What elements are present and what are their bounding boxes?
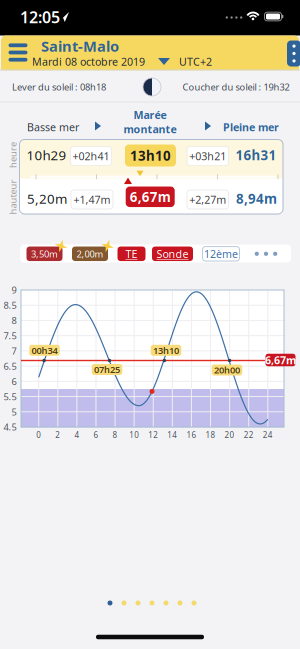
staticText: TE [125, 247, 137, 261]
staticText: 7.5 [3, 329, 16, 342]
staticText: 24 [263, 430, 273, 440]
staticText: 9 [11, 284, 16, 296]
staticText: 5.5 [3, 390, 16, 403]
staticText: 8.5 [3, 299, 16, 311]
staticText: 10 [129, 430, 139, 440]
staticText: 12ème [204, 247, 238, 261]
staticText: Pleine mer [223, 120, 279, 134]
staticText: Sonde [156, 247, 188, 261]
staticText: 6,67m [265, 353, 296, 367]
button[interactable]: Plus [244, 246, 288, 261]
staticText: montante [123, 122, 176, 136]
button[interactable]: Pleine mer [223, 120, 279, 134]
staticText: 18 [205, 430, 215, 440]
button[interactable]: Sonde [152, 247, 193, 261]
staticText: 22 [244, 430, 254, 440]
staticText: 6 [93, 430, 98, 440]
staticText: 16 [186, 430, 196, 440]
staticText: Lever du soleil : 08h18 [12, 81, 106, 93]
staticText: 14 [167, 430, 177, 440]
staticText: 20h00 [214, 364, 240, 376]
staticText: 5 [11, 406, 16, 418]
staticText: 3,50m [31, 248, 58, 260]
staticText: UTC+2 [179, 54, 212, 69]
staticText: +02h41 [72, 149, 109, 163]
staticText: 8,94m [236, 190, 277, 207]
staticText: 12 [148, 430, 158, 440]
staticText: hauteur [0, 191, 30, 203]
button[interactable]: 2,00m [72, 247, 108, 261]
button[interactable]: Menu [3, 38, 33, 66]
button[interactable]: Pages [107, 600, 196, 605]
staticText: 6.5 [3, 360, 16, 372]
button[interactable]: Mardi 08 octobre 2019 [32, 54, 212, 69]
staticText: 12:05 [20, 6, 60, 28]
staticText: heure [0, 149, 26, 161]
staticText: Basse mer [27, 120, 79, 134]
staticText: 13h10 [130, 147, 171, 164]
staticText: 16h31 [235, 146, 276, 164]
staticText: +2,27m [189, 192, 226, 207]
staticText: 2,00m [76, 248, 103, 260]
button[interactable]: Marée précédente [95, 121, 101, 130]
staticText: 4.5 [3, 421, 16, 433]
staticText: 5,20m [27, 190, 67, 207]
staticText: 6,67m [130, 188, 171, 206]
staticText: Saint-Malo [41, 36, 119, 56]
staticText: 00h34 [31, 344, 57, 356]
staticText: Coucher du soleil : 19h32 [182, 81, 289, 93]
staticText: Mardi 08 octobre 2019 [32, 54, 145, 69]
staticText: 7 [11, 345, 16, 357]
staticText: +03h21 [189, 149, 226, 163]
button[interactable]: Marée suivante [205, 121, 211, 130]
button[interactable]: 12ème [202, 247, 239, 261]
staticText: 0 [36, 430, 41, 440]
staticText: 20 [225, 430, 235, 440]
button[interactable]: 3,50m [26, 247, 62, 261]
staticText: 8 [113, 430, 118, 440]
button[interactable]: Plus d'options [287, 40, 300, 66]
staticText: 6 [11, 375, 16, 387]
button[interactable]: TE [117, 247, 145, 261]
button[interactable]: Basse mer [27, 120, 79, 134]
staticText: 10h29 [26, 146, 66, 164]
staticText: 4 [74, 430, 79, 440]
staticText: +1,47m [73, 192, 110, 207]
staticText: 13h10 [153, 344, 179, 356]
staticText: 8 [11, 314, 16, 327]
staticText: 07h25 [94, 363, 120, 376]
staticText: Marée [133, 108, 166, 122]
staticText: 2 [55, 430, 60, 440]
